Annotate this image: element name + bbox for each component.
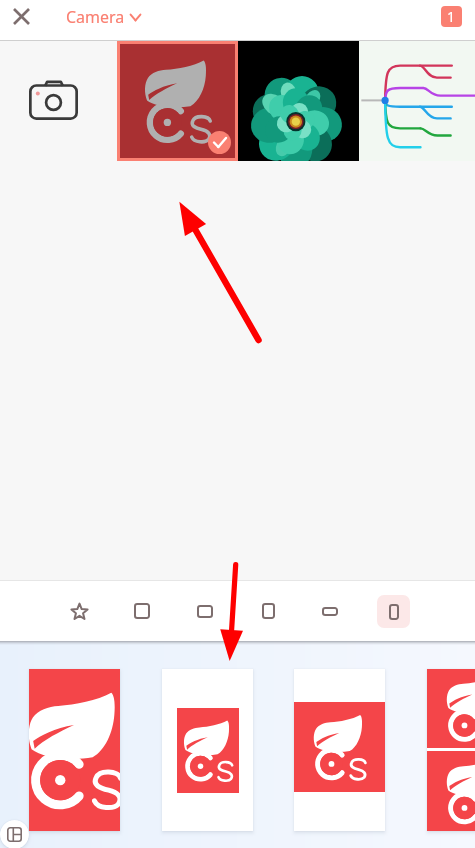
button[interactable]: Selected photo (117, 41, 238, 161)
button[interactable]: Close (6, 1, 37, 32)
button[interactable]: Full bleed 9:16 layout (29, 669, 120, 831)
button[interactable]: 4:3 (188, 594, 222, 628)
button[interactable]: Camera (66, 6, 141, 28)
button[interactable]: Favourite ratio (62, 594, 96, 628)
staticText: Camera (66, 6, 125, 28)
button[interactable]: 9:16 (377, 595, 410, 628)
button[interactable]: Full width band layout (294, 669, 385, 831)
button[interactable]: 16:9 (313, 594, 347, 628)
staticText: 1 (447, 7, 456, 26)
button[interactable]: Centred 3:4 layout (162, 669, 253, 831)
button[interactable]: Layout (0, 820, 29, 848)
button[interactable]: 1 photo selected (441, 6, 462, 27)
button[interactable]: Photo of a flower (238, 41, 359, 161)
button[interactable]: 3:4 (251, 594, 285, 628)
button[interactable]: 1:1 (125, 594, 159, 628)
button[interactable]: Two up layout (427, 669, 475, 831)
button[interactable]: Mind map screenshot (359, 41, 475, 161)
button[interactable]: Take photo (0, 41, 117, 161)
